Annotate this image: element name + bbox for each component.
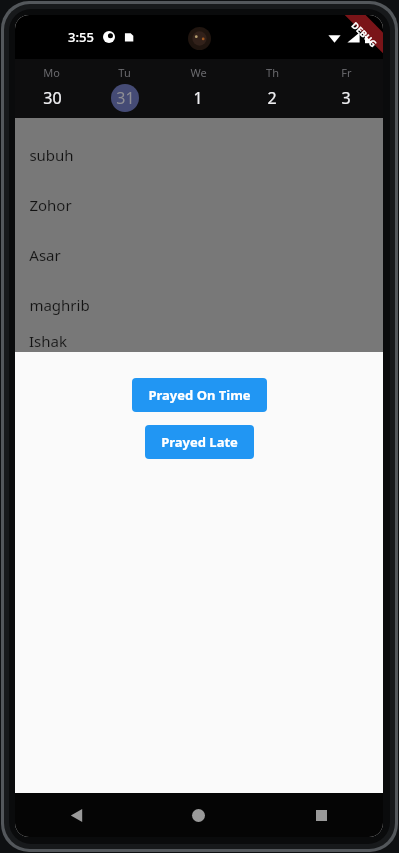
staticText: Ishak: [29, 331, 67, 351]
button[interactable]: Fr: [309, 59, 383, 118]
button[interactable]: Prayed Late: [145, 425, 254, 459]
staticText: 31: [116, 87, 135, 109]
staticText: Asar: [29, 245, 61, 265]
staticText: Prayed Late: [161, 433, 238, 451]
button[interactable]: Mo: [15, 59, 88, 118]
staticText: 3: [341, 87, 351, 109]
staticText: DEBUG: [349, 19, 380, 49]
staticText: Tu: [118, 65, 131, 80]
button[interactable]: maghrib: [15, 280, 383, 330]
staticText: Prayed On Time: [148, 386, 251, 404]
staticText: Mo: [43, 65, 60, 80]
staticText: subuh: [29, 145, 74, 165]
button[interactable]: Zohor: [15, 180, 383, 230]
staticText: 2: [267, 87, 277, 109]
staticText: Zohor: [29, 195, 72, 215]
staticText: We: [190, 65, 207, 80]
staticText: maghrib: [29, 295, 90, 315]
staticText: 3:55: [68, 28, 94, 46]
staticText: Fr: [341, 65, 352, 80]
staticText: 1: [193, 87, 203, 109]
button[interactable]: Th: [235, 59, 309, 118]
button[interactable]: Back: [15, 793, 137, 837]
button[interactable]: Ishak: [15, 330, 383, 352]
button[interactable]: subuh: [15, 130, 383, 180]
button[interactable]: Tu: [88, 59, 161, 118]
button[interactable]: Home: [137, 793, 260, 837]
button[interactable]: We: [161, 59, 235, 118]
button[interactable]: Recent apps: [260, 793, 383, 837]
button[interactable]: Asar: [15, 230, 383, 280]
staticText: 30: [43, 87, 62, 109]
staticText: Th: [266, 65, 279, 80]
button[interactable]: Prayed On Time: [132, 378, 267, 412]
